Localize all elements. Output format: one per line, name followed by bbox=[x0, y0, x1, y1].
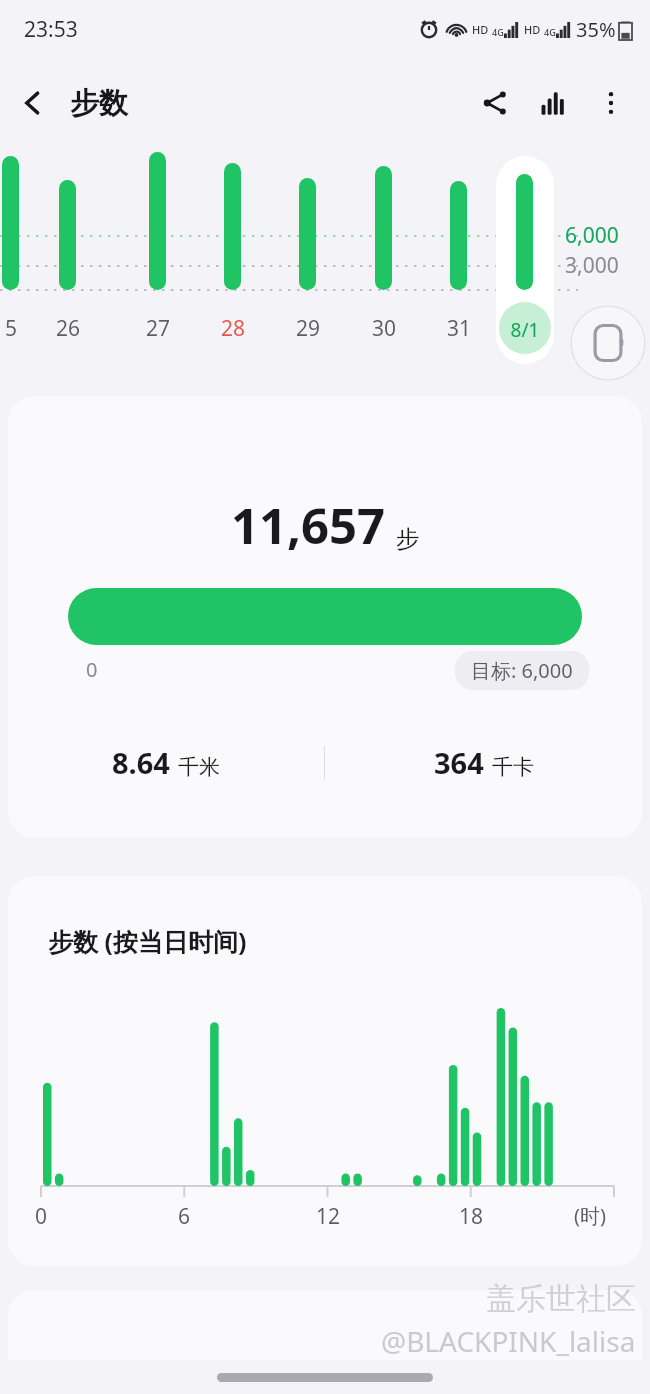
staticText: (时) bbox=[574, 1202, 606, 1229]
staticText: 0 bbox=[27, 1202, 55, 1231]
staticText: 12 bbox=[314, 1202, 342, 1231]
staticText: 30 bbox=[364, 314, 404, 343]
staticText: @BLACKPINK_lalisa bbox=[381, 1322, 636, 1360]
staticText: 千米 bbox=[178, 754, 220, 780]
staticText: 步数 bbox=[70, 85, 128, 122]
staticText: 目标: 6,000 bbox=[471, 657, 573, 684]
button[interactable]: Watch source bbox=[570, 305, 646, 381]
staticText: 6 bbox=[170, 1202, 198, 1231]
staticText: 5 bbox=[0, 314, 31, 343]
staticText: 4G bbox=[544, 26, 556, 38]
staticText: 28 bbox=[213, 314, 253, 343]
staticText: 3,000 bbox=[565, 251, 619, 280]
staticText: 23:53 bbox=[24, 15, 78, 44]
staticText: 盖乐世社区 bbox=[486, 1280, 636, 1318]
staticText: 26 bbox=[48, 314, 88, 343]
staticText: 千卡 bbox=[492, 754, 534, 780]
button[interactable]: Share bbox=[466, 74, 524, 132]
staticText: 364 bbox=[434, 743, 484, 782]
staticText: 8.64 bbox=[112, 743, 170, 782]
staticText: 0 bbox=[86, 656, 98, 683]
staticText: HD bbox=[524, 22, 541, 37]
button[interactable]: 8.64 bbox=[8, 743, 324, 782]
staticText: 6,000 bbox=[565, 221, 619, 250]
button[interactable]: 364 bbox=[325, 743, 642, 782]
staticText: 步数 (按当日时间) bbox=[48, 924, 247, 958]
staticText: 29 bbox=[288, 314, 328, 343]
button[interactable]: More options bbox=[582, 74, 640, 132]
button[interactable]: 步数 (按当日时间) bbox=[8, 876, 642, 1266]
staticText: HD bbox=[472, 22, 489, 37]
staticText: 18 bbox=[457, 1202, 485, 1231]
staticText: 步 bbox=[396, 524, 420, 554]
staticText: 31 bbox=[439, 314, 479, 343]
button[interactable]: Trends bbox=[524, 74, 582, 132]
staticText: 8/1 bbox=[504, 317, 546, 343]
button[interactable]: 11,657 bbox=[8, 396, 642, 838]
staticText: 27 bbox=[138, 314, 178, 343]
staticText: 4G bbox=[492, 26, 504, 38]
staticText: 35% bbox=[576, 16, 616, 43]
button[interactable]: Back bbox=[0, 70, 66, 136]
staticText: 11,657 bbox=[231, 492, 386, 559]
